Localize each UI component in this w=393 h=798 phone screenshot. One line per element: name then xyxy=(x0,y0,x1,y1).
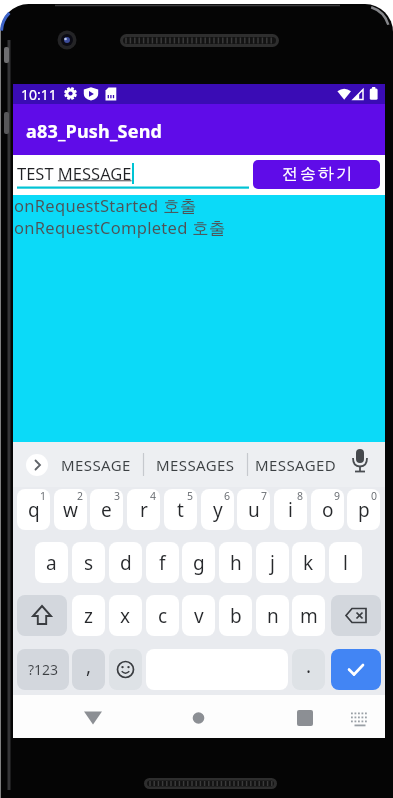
staticText: m xyxy=(300,603,318,629)
staticText: 9 xyxy=(334,489,341,503)
staticText: onRequestCompleted 호출 xyxy=(14,216,226,239)
button[interactable]: . xyxy=(292,649,325,690)
button[interactable]: 전송하기 xyxy=(253,160,380,189)
staticText: a xyxy=(46,550,57,576)
button[interactable]: z xyxy=(72,595,105,636)
staticText: g xyxy=(193,550,205,576)
staticText: x xyxy=(120,603,131,629)
button[interactable]: MESSAGE xyxy=(48,442,143,487)
button[interactable]: e xyxy=(90,489,123,530)
button[interactable]: q xyxy=(17,489,50,530)
staticText: r xyxy=(140,497,148,523)
button[interactable]: t xyxy=(164,489,197,530)
button[interactable]: w xyxy=(54,489,87,530)
button[interactable] xyxy=(26,454,48,476)
button[interactable]: m xyxy=(292,595,325,636)
staticText: u xyxy=(248,497,260,523)
staticText: 10:11 xyxy=(21,85,57,104)
staticText: onRequestStarted 호출 xyxy=(14,194,197,217)
staticText: i xyxy=(288,497,293,523)
staticText: v xyxy=(194,603,204,629)
button[interactable]: f xyxy=(146,542,179,583)
staticText: 7 xyxy=(261,489,268,503)
button[interactable] xyxy=(109,649,142,690)
button[interactable]: d xyxy=(109,542,142,583)
staticText: z xyxy=(84,603,93,629)
staticText: k xyxy=(303,550,314,576)
button[interactable]: o xyxy=(311,489,344,530)
staticText: 전송하기 xyxy=(281,164,353,184)
staticText: d xyxy=(120,550,132,576)
staticText: 1 xyxy=(40,489,47,503)
button[interactable] xyxy=(331,595,381,636)
button[interactable]: g xyxy=(182,542,215,583)
staticText: 0 xyxy=(371,489,378,503)
staticText: l xyxy=(343,550,348,576)
staticText: 6 xyxy=(224,489,231,503)
button[interactable]: , xyxy=(72,649,105,690)
staticText: y xyxy=(213,497,223,523)
button[interactable]: i xyxy=(274,489,307,530)
staticText: 4 xyxy=(150,489,157,503)
button[interactable]: h xyxy=(219,542,252,583)
staticText: MESSAGE xyxy=(61,455,131,475)
button[interactable]: b xyxy=(219,595,252,636)
button[interactable]: n xyxy=(256,595,289,636)
staticText: a83_Push_Send xyxy=(26,119,163,144)
staticText: . xyxy=(306,653,312,679)
button[interactable] xyxy=(137,695,261,738)
button[interactable] xyxy=(261,695,385,738)
staticText: j xyxy=(270,550,275,576)
staticText: h xyxy=(230,550,242,576)
button[interactable]: u xyxy=(237,489,270,530)
staticText: 8 xyxy=(297,489,304,503)
staticText: ?123 xyxy=(28,660,59,679)
button[interactable]: k xyxy=(292,542,325,583)
button[interactable]: v xyxy=(182,595,215,636)
button[interactable]: j xyxy=(256,542,289,583)
staticText: b xyxy=(230,603,242,629)
button[interactable] xyxy=(13,695,137,738)
staticText: 5 xyxy=(187,489,194,503)
staticText: 2 xyxy=(77,489,84,503)
staticText: o xyxy=(322,497,334,523)
button[interactable]: a xyxy=(35,542,68,583)
staticText: 3 xyxy=(114,489,121,503)
button[interactable]: c xyxy=(146,595,179,636)
staticText: MESSAGES xyxy=(156,455,235,475)
button[interactable]: ?123 xyxy=(17,649,69,690)
staticText: MESSAGED xyxy=(255,455,337,475)
staticText: q xyxy=(28,497,40,523)
button[interactable]: s xyxy=(72,542,105,583)
button[interactable]: x xyxy=(109,595,142,636)
staticText: c xyxy=(158,603,168,629)
button[interactable] xyxy=(331,649,381,690)
button[interactable]: r xyxy=(127,489,160,530)
button[interactable]: y xyxy=(201,489,234,530)
button[interactable]: MESSAGES xyxy=(143,442,247,487)
staticText: t xyxy=(177,497,184,523)
staticText: f xyxy=(159,550,166,576)
staticText: TEST MESSAGE xyxy=(17,162,132,184)
staticText: e xyxy=(101,497,112,523)
button[interactable]: p xyxy=(347,489,380,530)
button[interactable]: MESSAGED xyxy=(247,442,345,487)
button[interactable] xyxy=(17,595,67,636)
staticText: w xyxy=(63,497,78,523)
button[interactable]: l xyxy=(329,542,362,583)
staticText: s xyxy=(84,550,94,576)
staticText: p xyxy=(358,497,370,523)
staticText: , xyxy=(86,653,92,679)
staticText: n xyxy=(267,603,279,629)
